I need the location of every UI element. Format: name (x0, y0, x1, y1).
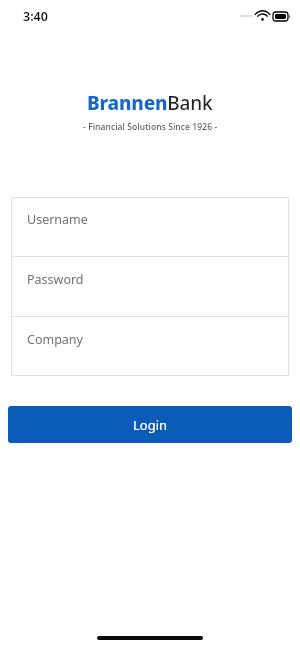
staticText: Company (27, 331, 83, 348)
button[interactable]: Password (11, 257, 289, 316)
button[interactable]: Username (11, 197, 289, 256)
button[interactable]: Company (11, 317, 289, 376)
staticText: 3:40 (23, 8, 48, 25)
button[interactable]: Login (8, 406, 292, 443)
staticText: BrannenBank (87, 90, 213, 116)
staticText: Password (27, 271, 84, 288)
staticText: Login (133, 416, 168, 434)
staticText: Username (27, 211, 88, 228)
staticText: - Financial Solutions Since 1926 - (83, 121, 218, 133)
